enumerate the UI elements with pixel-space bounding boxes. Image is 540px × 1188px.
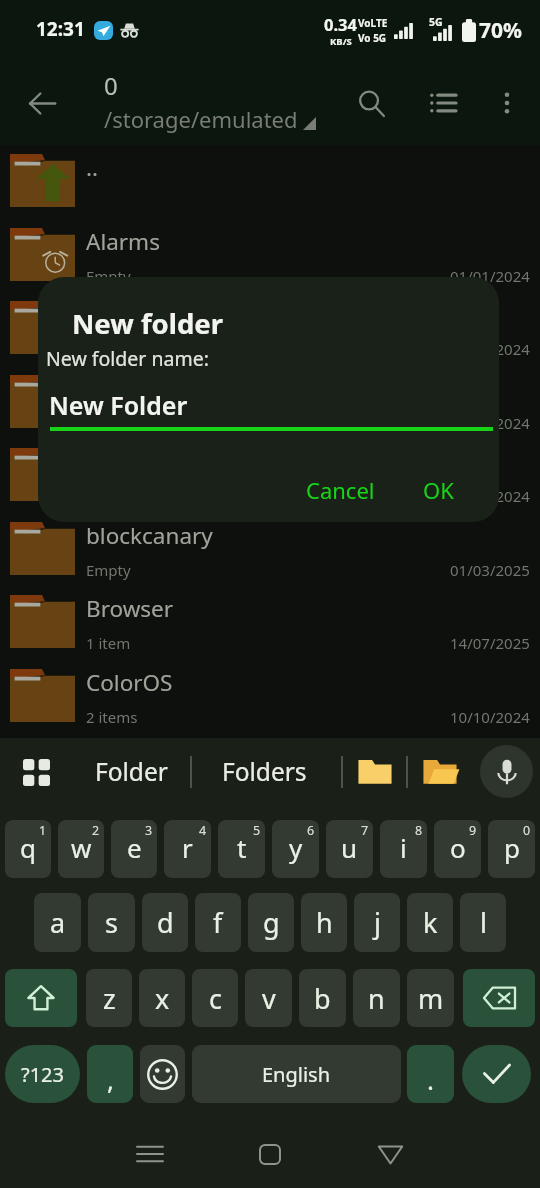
button[interactable]: Backspace: [463, 969, 535, 1027]
button[interactable]: ?123: [5, 1045, 80, 1103]
staticText: 5G: [429, 15, 443, 29]
staticText: Empty: [86, 266, 131, 286]
button[interactable]: ColorOS: [0, 660, 540, 734]
button[interactable]: More options: [481, 77, 533, 129]
button[interactable]: u: [326, 820, 373, 878]
staticText: New Folder: [49, 388, 188, 422]
button[interactable]: a: [34, 893, 81, 952]
staticText: v: [262, 980, 276, 1017]
staticText: 6: [307, 822, 315, 839]
button[interactable]: Search: [345, 77, 397, 129]
staticText: VoLTE: [358, 16, 388, 30]
staticText: m: [418, 980, 444, 1017]
button[interactable]: Home: [241, 1125, 299, 1183]
button[interactable]: .: [407, 1045, 454, 1103]
button[interactable]: Android: [0, 292, 540, 366]
button[interactable]: Recents: [121, 1125, 179, 1183]
button[interactable]: ..: [0, 145, 540, 219]
button[interactable]: s: [88, 893, 135, 952]
button[interactable]: [345, 738, 405, 805]
staticText: 01/01/2024: [450, 413, 530, 433]
button[interactable]: i: [380, 820, 427, 878]
staticText: c: [209, 980, 222, 1017]
staticText: h: [316, 904, 333, 941]
button[interactable]: l: [460, 893, 506, 952]
button[interactable]: Enter: [462, 1045, 531, 1103]
button[interactable]: r: [164, 820, 211, 878]
staticText: 01/01/2024: [450, 266, 530, 286]
button[interactable]: z: [86, 969, 132, 1027]
staticText: Cancel: [306, 475, 375, 505]
button[interactable]: Back: [361, 1125, 419, 1183]
staticText: New folder: [72, 305, 224, 342]
button[interactable]: e: [111, 820, 157, 878]
button[interactable]: w: [58, 820, 104, 878]
staticText: 10/10/2024: [450, 707, 530, 727]
staticText: Alarms: [86, 226, 160, 257]
button[interactable]: m: [407, 969, 454, 1027]
staticText: English: [262, 1061, 331, 1088]
staticText: Folder: [95, 755, 168, 788]
button[interactable]: English: [192, 1045, 401, 1103]
staticText: blockcanary: [86, 520, 213, 551]
button[interactable]: ,: [87, 1045, 133, 1103]
button[interactable]: b: [299, 969, 346, 1027]
button[interactable]: j: [354, 893, 400, 952]
staticText: 01/03/2025: [450, 560, 530, 580]
staticText: 4: [199, 822, 207, 839]
button[interactable]: backups: [0, 439, 540, 513]
button[interactable]: g: [248, 893, 294, 952]
staticText: KB/S: [330, 35, 352, 48]
staticText: /storage/emulated: [104, 104, 298, 134]
button[interactable]: n: [353, 969, 400, 1027]
button[interactable]: d: [142, 893, 188, 952]
staticText: 5 items: [86, 339, 138, 359]
staticText: New folder name:: [46, 345, 209, 372]
button[interactable]: f: [195, 893, 241, 952]
button[interactable]: Apps: [8, 744, 64, 800]
staticText: 2: [92, 822, 100, 839]
staticText: 9: [469, 822, 477, 839]
staticText: 2 items: [86, 707, 138, 727]
staticText: ColorOS: [86, 667, 173, 698]
button[interactable]: Folder: [72, 738, 190, 805]
button[interactable]: Browser: [0, 586, 540, 660]
staticText: 01/01/2024: [450, 486, 530, 506]
staticText: x: [155, 980, 170, 1017]
button[interactable]: OK: [413, 467, 464, 513]
staticText: ?123: [21, 1061, 64, 1088]
button[interactable]: Alarms: [0, 219, 540, 293]
staticText: f: [213, 904, 223, 941]
button[interactable]: h: [301, 893, 347, 952]
button[interactable]: y: [272, 820, 319, 878]
button[interactable]: Emoji: [140, 1045, 185, 1103]
button[interactable]: blockcanary: [0, 513, 540, 587]
staticText: Empty: [86, 413, 131, 433]
staticText: 01/01/2024: [450, 339, 530, 359]
button[interactable]: q: [5, 820, 51, 878]
staticText: 3: [145, 822, 153, 839]
button[interactable]: Audiobooks: [0, 366, 540, 440]
button[interactable]: Folders: [194, 738, 334, 805]
button[interactable]: t: [218, 820, 265, 878]
button[interactable]: [410, 738, 470, 805]
button[interactable]: Shift: [5, 969, 77, 1027]
button[interactable]: k: [407, 893, 453, 952]
button[interactable]: p: [488, 820, 535, 878]
button[interactable]: View mode: [417, 77, 469, 129]
button[interactable]: c: [192, 969, 238, 1027]
button[interactable]: Cancel: [296, 467, 385, 513]
staticText: 14/07/2025: [450, 633, 530, 653]
staticText: l: [480, 904, 487, 941]
button[interactable]: Voice input: [480, 745, 533, 798]
staticText: 12:31: [36, 16, 85, 42]
staticText: u: [341, 830, 358, 865]
staticText: g: [263, 904, 280, 941]
button[interactable]: Back: [16, 77, 68, 129]
staticText: z: [103, 980, 116, 1017]
button[interactable]: x: [139, 969, 185, 1027]
staticText: 0: [523, 822, 531, 839]
staticText: .: [427, 1062, 434, 1097]
button[interactable]: v: [245, 969, 292, 1027]
button[interactable]: o: [434, 820, 481, 878]
